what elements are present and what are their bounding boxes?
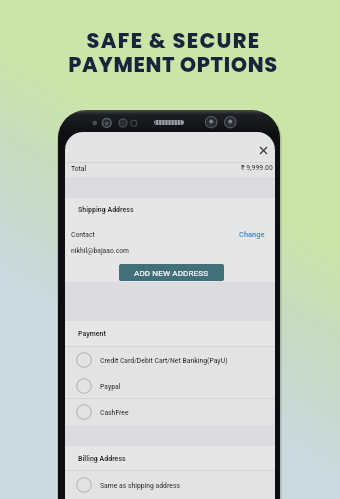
staticText: ₹ 9,999.00 (241, 164, 273, 172)
staticText: nikhil@bajaao.com (71, 247, 129, 255)
button[interactable] (65, 373, 275, 399)
staticText: Paypal (100, 383, 121, 391)
staticText: Same as shipping address (100, 482, 180, 490)
staticText: CashFree (100, 409, 129, 417)
staticText: Billing Address (78, 455, 126, 463)
staticText: Change (239, 230, 265, 239)
staticText: Total (71, 165, 87, 173)
staticText: SAFE & SECURE (86, 26, 261, 55)
staticText: Contact (71, 231, 95, 239)
staticText: ADD NEW ADDRESS (134, 268, 209, 277)
button[interactable]: Change (225, 227, 265, 241)
button[interactable]: ADD NEW ADDRESS (119, 264, 224, 281)
staticText: Credit Card/Debit Cart/Net Banking(PayU) (100, 357, 228, 365)
button[interactable] (65, 399, 275, 425)
button[interactable] (65, 347, 275, 374)
button[interactable]: Close (253, 140, 273, 160)
staticText: Payment (78, 330, 106, 338)
staticText: PAYMENT OPTIONS (68, 50, 278, 79)
button[interactable] (65, 471, 275, 499)
staticText: Shipping Address (78, 206, 134, 214)
